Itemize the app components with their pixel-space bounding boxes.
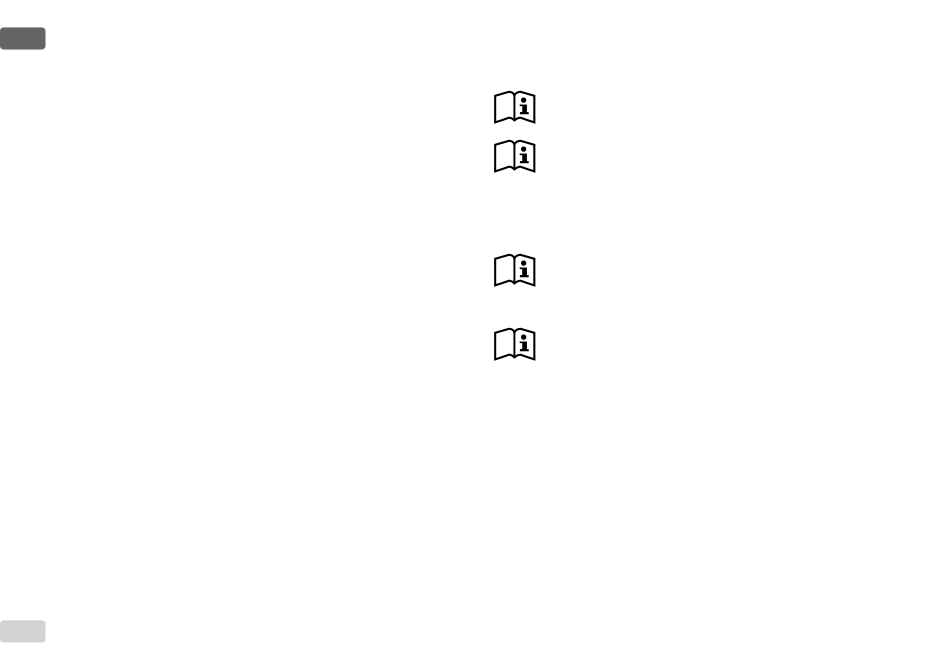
button[interactable]: Back to top [0,620,45,642]
button[interactable]: Consult the instruction manual [494,90,535,123]
button[interactable]: Consult the instruction manual [494,139,535,172]
button[interactable]: Skip to content [0,27,45,49]
button[interactable]: Consult the instruction manual [494,253,535,286]
button[interactable]: Consult the instruction manual [494,327,535,360]
